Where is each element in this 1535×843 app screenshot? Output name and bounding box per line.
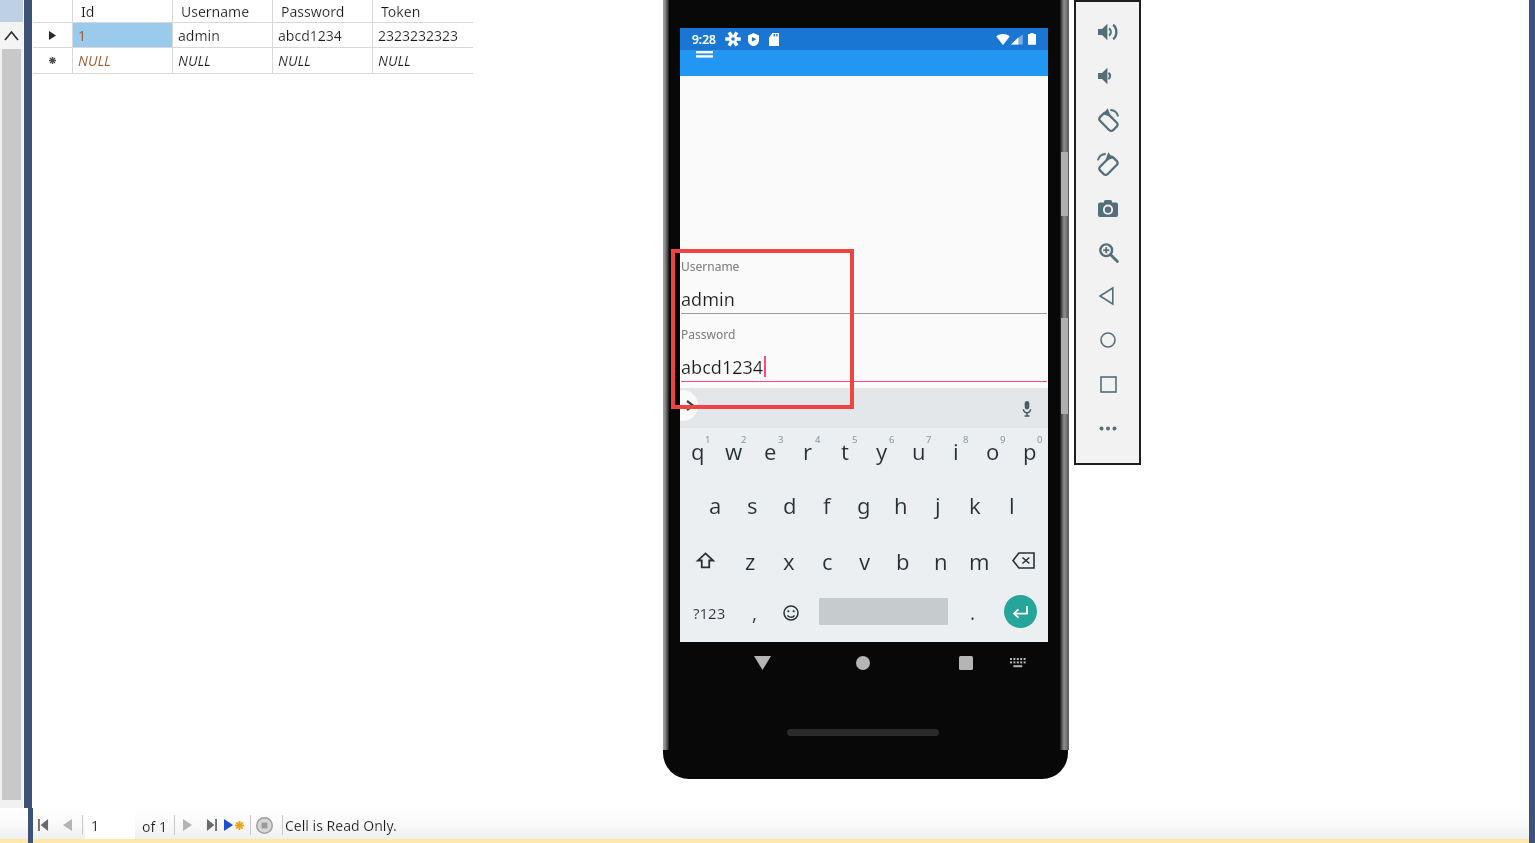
button[interactable]: Id — [73, 0, 172, 22]
button[interactable]: Password — [273, 0, 372, 22]
button[interactable]: a — [697, 477, 734, 530]
button[interactable]: New record — [222, 812, 246, 838]
button[interactable]: 9 — [974, 428, 1011, 477]
staticText: 7 — [926, 433, 932, 446]
button[interactable]: 1 — [85, 810, 135, 839]
button[interactable]: , — [737, 583, 773, 642]
button[interactable] — [680, 254, 1048, 316]
button[interactable] — [680, 322, 1048, 382]
staticText: s — [747, 490, 758, 520]
button[interactable]: Volume up — [1076, 10, 1140, 54]
staticText: , — [752, 600, 758, 626]
staticText: abcd1234 — [681, 355, 764, 380]
button[interactable]: 3 — [752, 428, 789, 477]
button[interactable]: Voice input — [1016, 397, 1038, 419]
staticText: 3 — [778, 433, 784, 446]
button[interactable]: 1 — [680, 428, 716, 477]
button[interactable]: 0 — [1011, 428, 1048, 477]
button[interactable]: Back — [1076, 274, 1140, 318]
button[interactable]: Take screenshot — [1076, 186, 1140, 230]
button[interactable]: 1 — [73, 23, 172, 47]
button[interactable]: Hide keyboard — [1001, 647, 1033, 679]
button[interactable]: b — [884, 530, 922, 583]
button[interactable]: x — [770, 530, 808, 583]
button[interactable]: g — [845, 477, 882, 530]
button[interactable]: c — [808, 530, 846, 583]
button[interactable]: Stop — [252, 812, 276, 838]
button[interactable]: Backspace — [998, 530, 1048, 583]
button[interactable]: Volume down — [1076, 54, 1140, 98]
button[interactable]: Next record — [175, 812, 199, 838]
staticText: d — [783, 490, 797, 520]
staticText: of 1 — [142, 817, 167, 836]
button[interactable]: Enter — [993, 583, 1047, 642]
staticText: Username — [181, 2, 250, 21]
button[interactable]: 5 — [826, 428, 863, 477]
staticText: q — [691, 436, 705, 466]
staticText: NULL — [78, 51, 111, 70]
button[interactable]: ?123 — [683, 583, 735, 642]
button[interactable]: Token — [373, 0, 472, 22]
button[interactable]: NULL — [373, 48, 472, 73]
button[interactable]: Menu — [688, 50, 716, 70]
button[interactable]: NULL — [173, 48, 272, 73]
button[interactable]: admin — [173, 23, 272, 47]
staticText: 1 — [91, 816, 100, 835]
button[interactable]: NULL — [73, 48, 172, 73]
button[interactable]: 2323232323 — [373, 23, 472, 47]
button[interactable]: Last record — [199, 812, 223, 838]
button[interactable]: 2 — [716, 428, 752, 477]
button[interactable]: 7 — [900, 428, 937, 477]
staticText: j — [935, 490, 941, 520]
button[interactable]: Emoji — [773, 583, 809, 642]
button[interactable]: l — [993, 477, 1030, 530]
button[interactable]: First record — [31, 812, 55, 838]
button[interactable]: Overview — [1076, 362, 1140, 406]
button[interactable]: n — [922, 530, 960, 583]
button[interactable]: More suggestions — [680, 390, 698, 421]
button[interactable]: j — [919, 477, 956, 530]
staticText: n — [934, 546, 948, 576]
staticText: l — [1009, 490, 1015, 520]
button[interactable]: d — [771, 477, 808, 530]
button[interactable]: Rotate left — [1076, 98, 1140, 142]
button[interactable]: m — [960, 530, 998, 583]
button[interactable]: k — [956, 477, 993, 530]
button[interactable]: Recent apps — [950, 647, 982, 679]
button[interactable]: Home — [1076, 318, 1140, 362]
staticText: 6 — [889, 433, 895, 446]
staticText: 1 — [78, 26, 87, 45]
staticText: i — [953, 436, 959, 466]
staticText: a — [709, 490, 722, 520]
button[interactable]: Previous record — [55, 812, 79, 838]
button[interactable]: Zoom — [1076, 230, 1140, 274]
button[interactable]: f — [808, 477, 845, 530]
staticText: Token — [381, 2, 421, 21]
button[interactable]: h — [882, 477, 919, 530]
staticText: Cell is Read Only. — [285, 816, 397, 835]
button[interactable]: . — [955, 583, 991, 642]
staticText: admin — [178, 26, 220, 45]
button[interactable]: Back — [746, 647, 778, 679]
staticText: 4 — [815, 433, 821, 446]
button[interactable]: 8 — [937, 428, 974, 477]
staticText: 9:28 — [692, 31, 716, 47]
button[interactable]: Rotate right — [1076, 142, 1140, 186]
button[interactable]: v — [846, 530, 884, 583]
staticText: 9 — [1000, 433, 1006, 446]
button[interactable]: 6 — [863, 428, 900, 477]
button[interactable]: z — [731, 530, 770, 583]
staticText: Username — [681, 258, 740, 274]
button[interactable]: 4 — [789, 428, 826, 477]
button[interactable]: More — [1076, 406, 1140, 450]
button[interactable]: NULL — [273, 48, 372, 73]
staticText: c — [822, 546, 833, 576]
button[interactable]: Scroll up — [0, 23, 23, 49]
button[interactable]: Space — [812, 583, 954, 642]
button[interactable]: Home — [847, 647, 879, 679]
button[interactable]: Username — [173, 0, 272, 22]
button[interactable]: s — [734, 477, 771, 530]
staticText: m — [969, 546, 990, 576]
button[interactable]: abcd1234 — [273, 23, 372, 47]
button[interactable]: Shift — [680, 530, 731, 583]
